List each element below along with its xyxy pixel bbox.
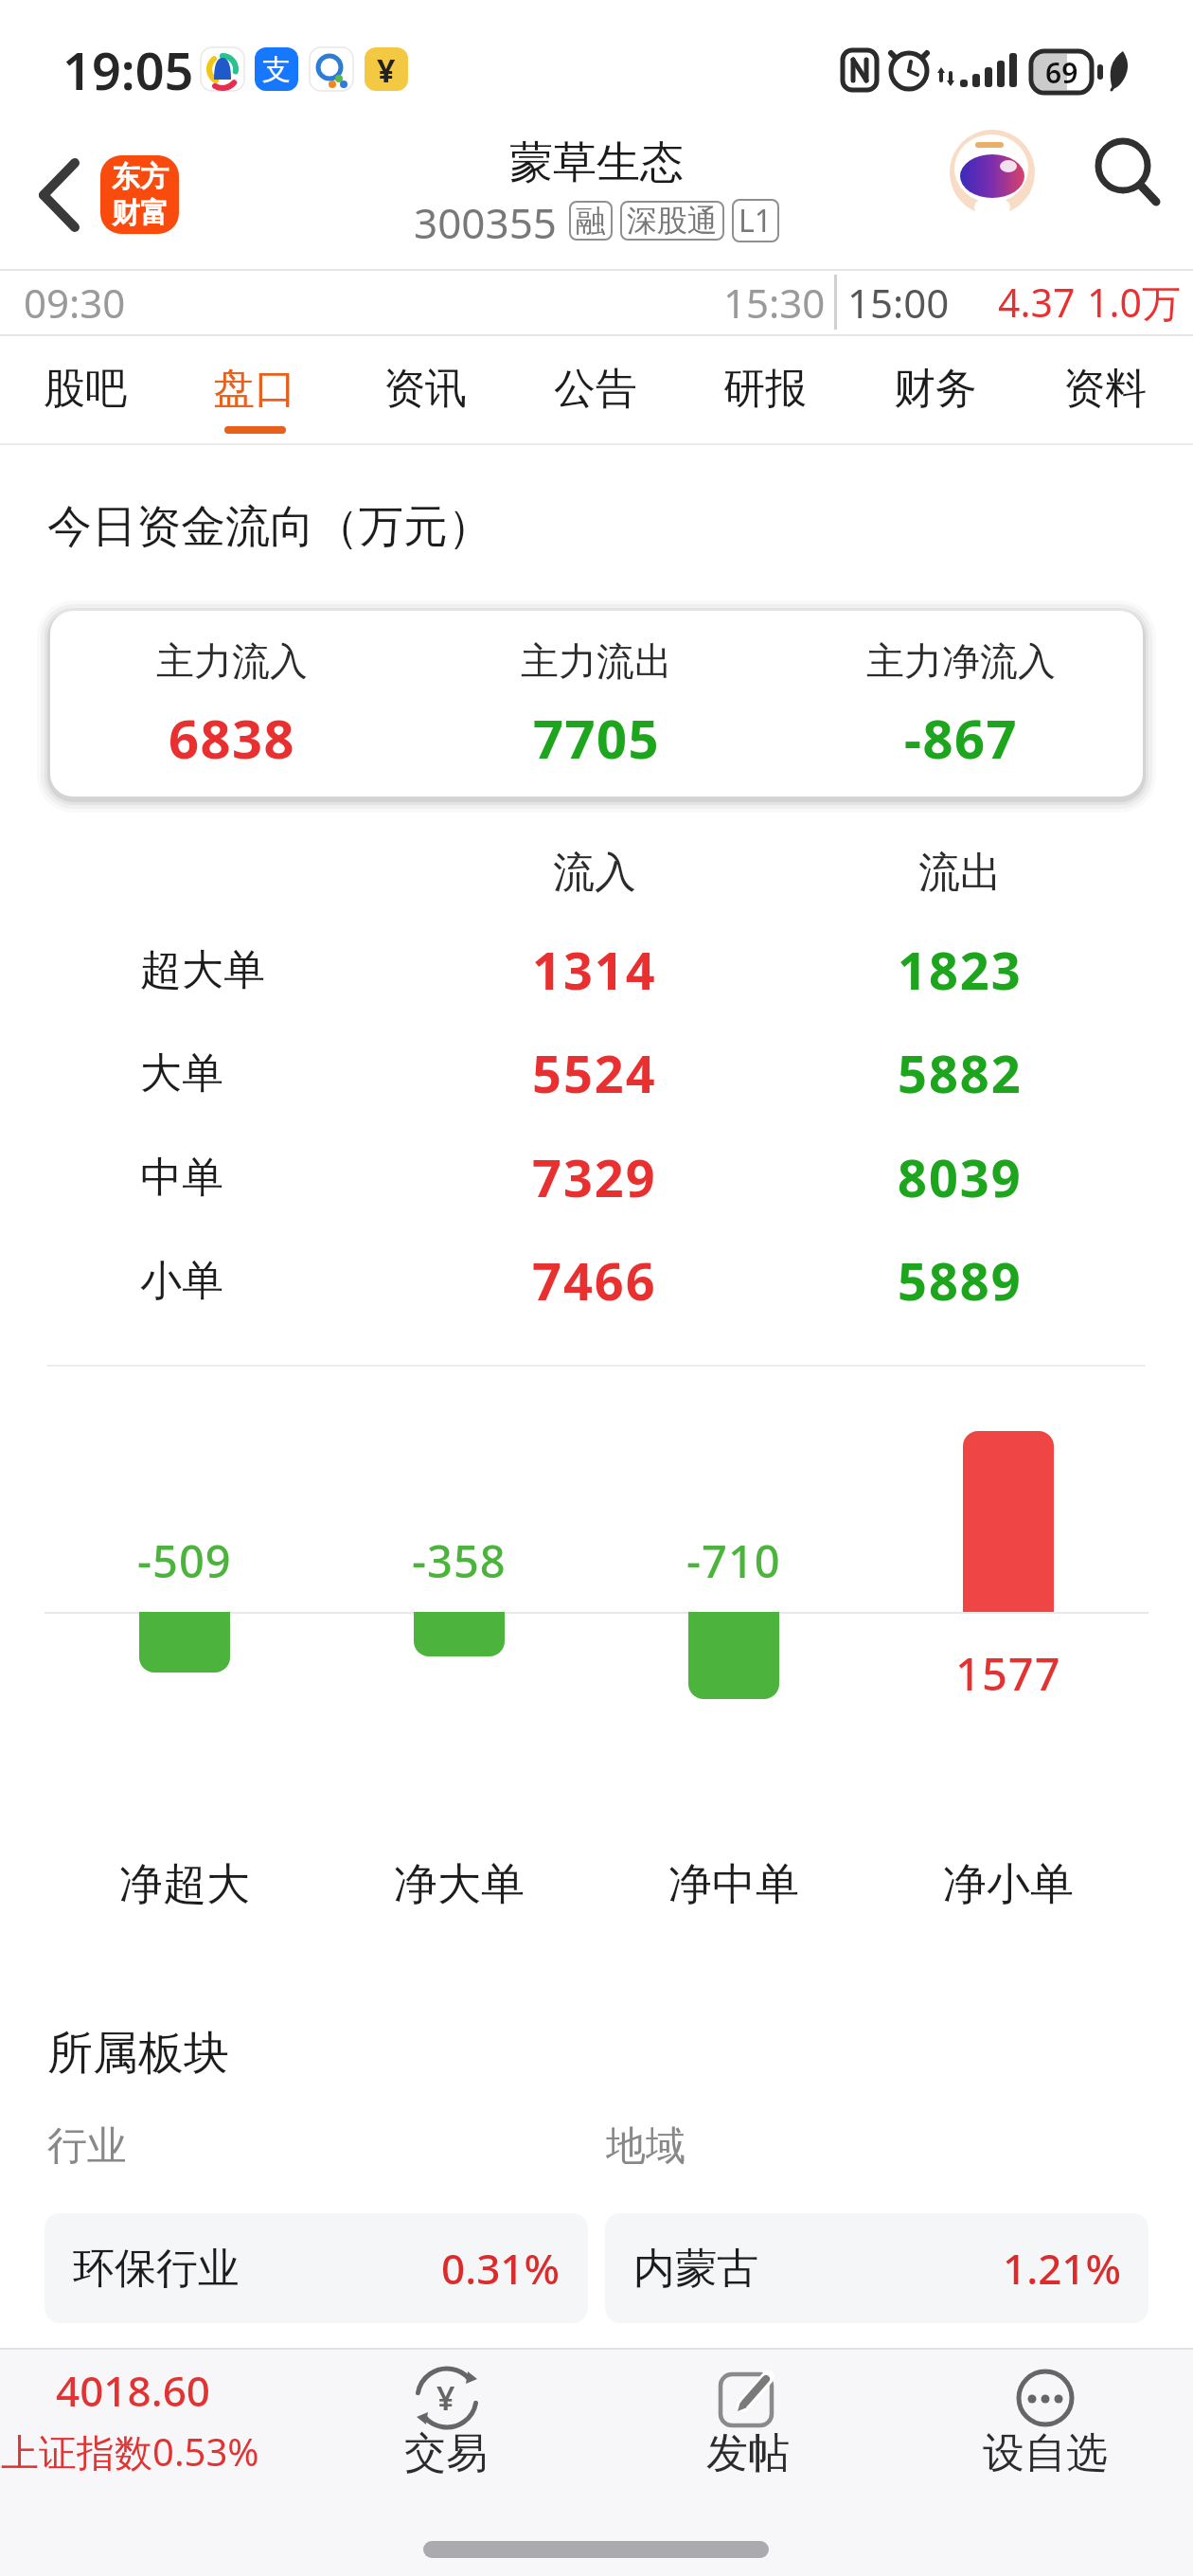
button[interactable] xyxy=(0,2349,275,2491)
staticText: 7329 xyxy=(532,1142,657,1212)
staticText: 资讯 xyxy=(383,363,467,415)
staticText: 1823 xyxy=(898,935,1023,1005)
button[interactable] xyxy=(24,152,99,237)
button[interactable]: 研报 xyxy=(682,341,848,436)
button[interactable]: 盘口 xyxy=(171,341,338,436)
staticText: 东方 xyxy=(112,159,169,195)
staticText: 支 xyxy=(262,52,291,88)
button[interactable]: 资讯 xyxy=(342,341,508,436)
button[interactable]: 东方 xyxy=(100,155,179,234)
staticText: 1.21% xyxy=(1003,2240,1121,2297)
staticText: 内蒙古 xyxy=(633,2243,758,2295)
staticText: -867 xyxy=(904,702,1019,774)
staticText: 8039 xyxy=(898,1142,1023,1212)
staticText: 15:00 xyxy=(847,276,950,330)
button[interactable]: 股吧 xyxy=(2,341,169,436)
staticText: 蒙草生态 xyxy=(509,135,684,190)
staticText: 设自选 xyxy=(983,2427,1108,2479)
staticText: 股吧 xyxy=(44,363,127,415)
staticText: 融 xyxy=(576,202,606,240)
staticText: L1 xyxy=(739,200,773,241)
button[interactable] xyxy=(605,2213,1148,2323)
staticText: 财务 xyxy=(894,363,977,415)
staticText: 1577 xyxy=(955,1643,1061,1704)
staticText: 净大单 xyxy=(394,1857,525,1912)
staticText: 财富 xyxy=(112,195,169,231)
staticText: 300355 xyxy=(414,194,558,247)
staticText: 行业 xyxy=(47,2121,127,2172)
staticText: -710 xyxy=(686,1530,781,1591)
staticText: -509 xyxy=(137,1530,232,1591)
staticText: 4018.60 xyxy=(56,2362,210,2419)
button[interactable] xyxy=(950,130,1035,215)
staticText: 流出 xyxy=(918,847,1002,899)
button[interactable] xyxy=(966,2352,1127,2485)
staticText: 上证指数0.53% xyxy=(1,2425,259,2478)
button[interactable]: 财务 xyxy=(852,341,1019,436)
staticText: 主力流入 xyxy=(156,637,308,685)
staticText: 中单 xyxy=(140,1152,223,1204)
staticText: 0.31% xyxy=(441,2240,560,2297)
staticText: 1314 xyxy=(532,935,657,1005)
staticText: 净中单 xyxy=(668,1857,799,1912)
staticText: 5882 xyxy=(898,1038,1023,1108)
staticText: 大单 xyxy=(140,1047,223,1100)
staticText: 公告 xyxy=(554,363,637,415)
staticText: 主力流出 xyxy=(521,637,672,685)
staticText: 小单 xyxy=(140,1255,223,1307)
button[interactable] xyxy=(672,2352,828,2485)
staticText: -358 xyxy=(412,1530,507,1591)
staticText: 深股通 xyxy=(627,202,718,240)
staticText: 1.0万 xyxy=(1087,276,1181,329)
staticText: 研报 xyxy=(723,363,807,415)
staticText: 5889 xyxy=(898,1245,1023,1315)
staticText: 主力净流入 xyxy=(866,637,1056,685)
staticText: 69 xyxy=(1045,53,1078,92)
staticText: 5524 xyxy=(532,1038,657,1108)
staticText: 净超大 xyxy=(119,1857,250,1912)
staticText: 净小单 xyxy=(943,1857,1074,1912)
staticText: ¥ xyxy=(436,2376,455,2420)
button[interactable]: 公告 xyxy=(512,341,679,436)
staticText: 所属板块 xyxy=(47,2025,229,2082)
button[interactable]: 资料 xyxy=(1022,341,1188,436)
button[interactable] xyxy=(50,611,1143,796)
staticText: 地域 xyxy=(606,2121,686,2172)
staticText: 流入 xyxy=(553,847,636,899)
button[interactable] xyxy=(1079,133,1174,218)
staticText: 4.37 xyxy=(998,276,1076,329)
staticText: 盘口 xyxy=(213,363,296,415)
staticText: 09:30 xyxy=(24,276,126,330)
staticText: 交易 xyxy=(404,2427,488,2479)
staticText: 7705 xyxy=(533,702,661,774)
staticText: 超大单 xyxy=(140,944,265,996)
button[interactable] xyxy=(45,2213,588,2323)
staticText: 今日资金流向（万元） xyxy=(47,499,492,555)
staticText: 6838 xyxy=(169,702,296,774)
staticText: 7466 xyxy=(532,1245,657,1315)
staticText: 发帖 xyxy=(706,2427,790,2479)
staticText: 15:30 xyxy=(723,276,826,330)
staticText: 资料 xyxy=(1063,363,1147,415)
button[interactable] xyxy=(369,2352,525,2485)
staticText: 环保行业 xyxy=(73,2243,240,2295)
staticText: ¥ xyxy=(377,48,396,92)
staticText: 19:05 xyxy=(62,35,194,105)
